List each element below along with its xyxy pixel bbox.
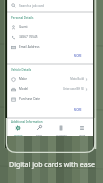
button[interactable]: Parts [29, 125, 49, 136]
staticText: Guest [19, 25, 28, 29]
button[interactable]: More [72, 125, 92, 136]
staticText: Parts [36, 133, 43, 136]
button[interactable]: Accounts [51, 125, 71, 136]
staticText: Vehicle Details [11, 68, 32, 72]
staticText: More [79, 133, 86, 136]
button[interactable]: Guest [7, 22, 93, 32]
staticText: 34567 76545 [19, 35, 38, 39]
button[interactable]: MORE [7, 52, 93, 63]
staticText: Service [14, 133, 23, 136]
button[interactable]: Make [7, 74, 93, 84]
button[interactable]: Service [8, 125, 28, 136]
staticText: Model [19, 87, 29, 91]
staticText: Moto Build [70, 77, 84, 81]
staticText: Make [19, 77, 27, 81]
staticText: Search a job card [19, 4, 44, 8]
staticText: Personal Details [11, 16, 34, 20]
staticText: Purchase Date [19, 97, 41, 101]
button[interactable]: Email Address [7, 42, 93, 52]
staticText: Additional Information [11, 120, 43, 124]
staticText: Accounts [56, 133, 67, 136]
button[interactable]: Model [7, 84, 93, 94]
staticText: MORE [74, 54, 82, 58]
button[interactable]: 34567 76545 [7, 32, 93, 42]
staticText: MORE [74, 108, 82, 112]
staticText: Email Address [19, 45, 40, 49]
button[interactable]: Search [7, 0, 93, 11]
button[interactable]: MORE [7, 104, 93, 117]
other: Search [11, 3, 16, 8]
staticText: Grise case BH SE [63, 87, 84, 91]
staticText: Digital job cards with ease [9, 160, 95, 170]
button[interactable]: Purchase Date [7, 94, 93, 104]
